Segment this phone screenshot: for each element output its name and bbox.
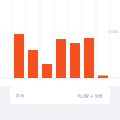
staticText: 주세 <box>16 93 24 98</box>
staticText: · <box>46 79 48 84</box>
staticText: · <box>18 79 20 84</box>
staticText: · <box>88 79 90 84</box>
staticText: 계산할 수 없음 <box>77 93 104 98</box>
staticText: · <box>102 79 104 84</box>
staticText: 5,000 <box>108 29 119 34</box>
staticText: · <box>60 79 62 84</box>
staticText: · <box>74 79 76 84</box>
button[interactable]: 주세 <box>10 86 110 104</box>
button[interactable]: Bar chart <box>0 0 120 86</box>
staticText: · <box>32 79 34 84</box>
